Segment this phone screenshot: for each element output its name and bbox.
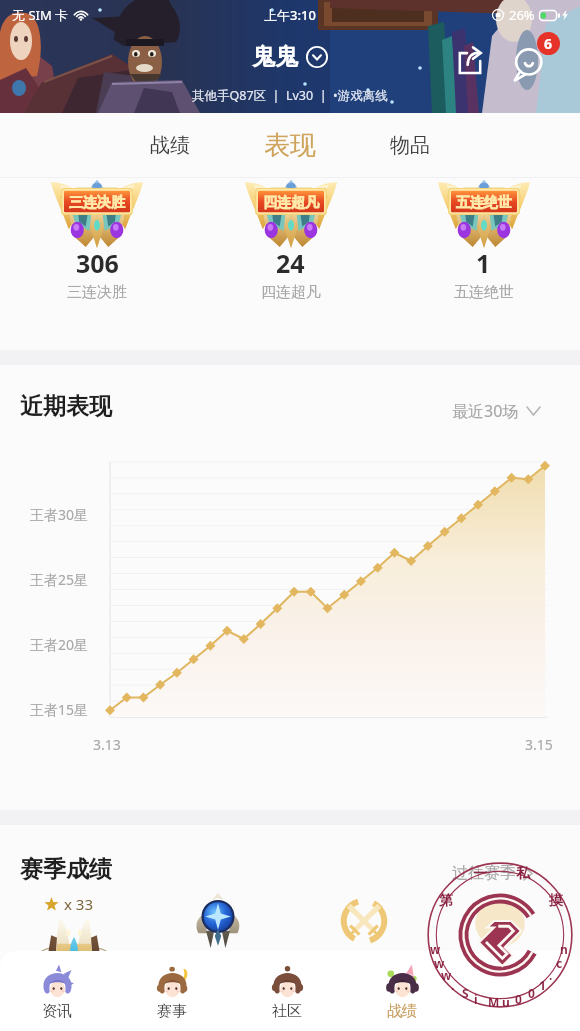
staticText: w bbox=[434, 955, 445, 971]
staticText bbox=[535, 876, 539, 895]
staticText: c bbox=[556, 955, 563, 971]
staticText bbox=[494, 861, 498, 880]
staticText: 0 bbox=[515, 991, 522, 1007]
staticText: 战绩 bbox=[150, 133, 190, 158]
staticText: 王者15星 bbox=[30, 700, 89, 719]
staticText: 王者25星 bbox=[30, 570, 89, 589]
staticText: 五连绝世 bbox=[456, 194, 512, 212]
staticText: 表现 bbox=[264, 129, 316, 162]
button[interactable]: Share bbox=[446, 36, 494, 84]
button[interactable]: 赛事 bbox=[124, 961, 220, 1021]
button[interactable]: 五连绝世 bbox=[387, 178, 580, 246]
staticText: M bbox=[488, 994, 500, 1010]
staticText: 306 bbox=[76, 246, 119, 280]
button[interactable]: 表现 bbox=[246, 113, 334, 178]
staticText: 摸 bbox=[549, 892, 563, 910]
button[interactable]: Rank crown bbox=[36, 915, 112, 963]
staticText: 0 bbox=[528, 985, 535, 1001]
staticText: w bbox=[441, 967, 452, 983]
button[interactable]: 鬼鬼 bbox=[248, 38, 332, 75]
staticText: . bbox=[549, 967, 553, 983]
staticText: 26% bbox=[509, 6, 535, 24]
staticText: 资讯 bbox=[42, 1002, 72, 1021]
button[interactable]: 四连超凡 bbox=[194, 178, 387, 246]
staticText: 无 SIM 卡 bbox=[12, 6, 69, 24]
staticText: u bbox=[502, 994, 510, 1010]
staticText bbox=[454, 876, 458, 895]
staticText: x 33 bbox=[64, 894, 93, 914]
staticText: 战绩 bbox=[387, 1002, 417, 1021]
staticText: 一 bbox=[473, 865, 487, 883]
button[interactable]: 战绩 bbox=[354, 961, 450, 1021]
staticText: 第 bbox=[439, 892, 453, 910]
staticText: 1 bbox=[539, 977, 546, 993]
staticText: . bbox=[451, 977, 455, 993]
staticText: 最近30场 bbox=[452, 400, 519, 422]
staticText: 鬼鬼 bbox=[252, 42, 298, 71]
staticText: 其他手Q87区 | Lv30 | •游戏离线 bbox=[192, 87, 388, 104]
staticText: 赛季成绩 bbox=[20, 855, 112, 884]
staticText: 王者20星 bbox=[30, 635, 89, 654]
staticText: 四连超凡 bbox=[263, 194, 319, 212]
staticText: 三连决胜 bbox=[69, 194, 125, 212]
staticText: 私 bbox=[516, 865, 530, 883]
staticText: 上午3:10 bbox=[264, 6, 316, 24]
button[interactable]: Season badge bbox=[195, 893, 241, 949]
staticText: 3.15 bbox=[525, 735, 553, 754]
button[interactable]: 三连决胜 bbox=[0, 178, 194, 246]
staticText: 1 bbox=[476, 246, 491, 280]
button[interactable]: Battle badge bbox=[341, 894, 387, 948]
staticText: n bbox=[560, 941, 568, 957]
staticText: 赛事 bbox=[157, 1002, 187, 1021]
staticText: 24 bbox=[276, 246, 305, 280]
staticText: 王者30星 bbox=[30, 505, 89, 524]
button[interactable]: 社区 bbox=[239, 961, 335, 1021]
staticText: 过往赛季 bbox=[452, 863, 516, 883]
staticText: S bbox=[462, 985, 469, 1001]
button[interactable]: 资讯 bbox=[9, 961, 105, 1021]
staticText: 四连超凡 bbox=[261, 283, 321, 302]
button[interactable]: 物品 bbox=[370, 113, 450, 178]
staticText: 五连绝世 bbox=[454, 283, 514, 302]
staticText: 6 bbox=[544, 34, 553, 53]
staticText: 近期表现 bbox=[20, 392, 112, 421]
staticText: 社区 bbox=[272, 1002, 302, 1021]
button[interactable]: Messages bbox=[504, 30, 562, 88]
staticText: i bbox=[474, 991, 478, 1007]
button[interactable]: 战绩 bbox=[130, 113, 210, 178]
staticText: 物品 bbox=[390, 133, 430, 158]
staticText: 3.13 bbox=[93, 735, 121, 754]
staticText: 三连决胜 bbox=[67, 283, 127, 302]
button[interactable]: 过往赛季 bbox=[448, 859, 536, 887]
staticText: w bbox=[430, 941, 441, 957]
button[interactable]: 最近30场 bbox=[448, 396, 544, 426]
